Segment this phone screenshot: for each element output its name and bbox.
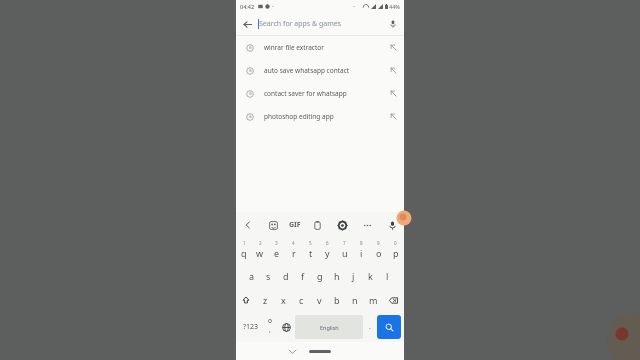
button[interactable]: c [292, 288, 310, 312]
button[interactable]: Emoji and comma [263, 315, 277, 339]
other: Insert suggestion [382, 36, 404, 59]
staticText: 04:42 [240, 3, 255, 10]
button[interactable]: n [346, 288, 364, 312]
staticText: Search for apps & games [259, 19, 342, 29]
button[interactable]: Change language [277, 315, 295, 339]
button[interactable]: b [328, 288, 346, 312]
staticText: d [283, 270, 289, 282]
staticText: j [352, 270, 355, 282]
button[interactable]: 5 [302, 238, 319, 264]
staticText: 2 [259, 240, 262, 246]
button[interactable]: English [295, 315, 363, 339]
staticText: w [256, 247, 264, 259]
staticText: 6 [326, 240, 329, 246]
staticText: 9 [377, 240, 380, 246]
button[interactable]: v [310, 288, 328, 312]
button[interactable]: Voice search [382, 13, 404, 35]
button[interactable]: Back [239, 216, 257, 234]
button[interactable]: Settings [333, 216, 351, 234]
staticText: . [369, 322, 371, 332]
button[interactable]: d [277, 264, 294, 288]
button[interactable]: Voice input [383, 216, 401, 234]
button[interactable]: k [362, 264, 379, 288]
staticText: r [292, 247, 296, 259]
button[interactable]: Search [377, 315, 401, 339]
button[interactable]: m [364, 288, 382, 312]
button[interactable]: auto save whatsapp contact [236, 59, 404, 82]
staticText: u [342, 247, 348, 259]
button[interactable]: ?123 [239, 315, 263, 339]
button[interactable]: photoshop editing app [236, 105, 404, 128]
staticText: 4 [292, 240, 295, 246]
staticText: x [281, 294, 286, 306]
button[interactable]: 4 [285, 238, 302, 264]
staticText: ?123 [243, 322, 259, 332]
staticText: contact saver for whatsapp [264, 89, 382, 98]
staticText: n [352, 294, 358, 306]
button[interactable]: Hide keyboard [286, 345, 298, 357]
button[interactable]: Shift [236, 288, 256, 312]
other: Insert suggestion [382, 59, 404, 82]
staticText: m [369, 294, 378, 306]
button[interactable]: 1 [236, 238, 252, 264]
button[interactable]: 3 [268, 238, 285, 264]
other: Insert suggestion [382, 82, 404, 105]
staticText: , [269, 325, 271, 335]
staticText: k [368, 270, 373, 282]
button[interactable]: 7 [336, 238, 353, 264]
staticText: English [320, 324, 339, 331]
button[interactable]: a [244, 264, 260, 288]
button[interactable]: . [363, 315, 377, 339]
button[interactable]: x [274, 288, 292, 312]
button[interactable]: Backspace [382, 288, 404, 312]
button[interactable]: 2 [252, 238, 268, 264]
staticText: z [263, 294, 268, 306]
staticText: o [376, 247, 382, 259]
button[interactable]: contact saver for whatsapp [236, 82, 404, 105]
button[interactable]: l [379, 264, 396, 288]
button[interactable]: Back [236, 13, 258, 35]
button[interactable]: Search for apps & games [258, 13, 382, 35]
staticText: c [299, 294, 304, 306]
staticText: h [334, 270, 340, 282]
staticText: 7 [343, 240, 346, 246]
button[interactable]: 9 [370, 238, 387, 264]
other: Insert suggestion [382, 105, 404, 128]
staticText: photoshop editing app [264, 112, 382, 121]
staticText: p [393, 247, 399, 259]
button[interactable]: 0 [387, 238, 404, 264]
staticText: 8 [360, 240, 363, 246]
staticText: e [274, 247, 280, 259]
staticText: auto save whatsapp contact [264, 66, 382, 75]
staticText: v [317, 294, 322, 306]
button[interactable]: winrar file extractor [236, 36, 404, 59]
button[interactable]: GIF [289, 216, 301, 234]
staticText: t [309, 247, 313, 259]
staticText: winrar file extractor [264, 43, 382, 52]
button[interactable]: f [294, 264, 311, 288]
button[interactable]: More options [358, 216, 376, 234]
staticText: b [334, 294, 340, 306]
staticText: y [325, 247, 330, 259]
staticText: a [249, 270, 255, 282]
staticText: 5 [309, 240, 312, 246]
staticText: 44% [389, 3, 400, 10]
button[interactable]: 6 [319, 238, 336, 264]
button[interactable]: s [260, 264, 277, 288]
button[interactable]: 8 [353, 238, 370, 264]
button[interactable]: z [256, 288, 274, 312]
button[interactable]: Stickers [264, 216, 282, 234]
staticText: s [266, 270, 271, 282]
staticText: 1 [243, 240, 246, 246]
staticText: f [301, 270, 305, 282]
button[interactable]: j [345, 264, 362, 288]
button[interactable]: Clipboard [308, 216, 326, 234]
button[interactable]: g [311, 264, 328, 288]
staticText: ·· [353, 3, 356, 10]
button[interactable]: h [328, 264, 345, 288]
staticText: ·· [272, 3, 275, 10]
staticText: GIF [289, 220, 301, 230]
staticText: 3 [275, 240, 278, 246]
staticText: q [241, 247, 247, 259]
staticText: i [360, 247, 363, 259]
